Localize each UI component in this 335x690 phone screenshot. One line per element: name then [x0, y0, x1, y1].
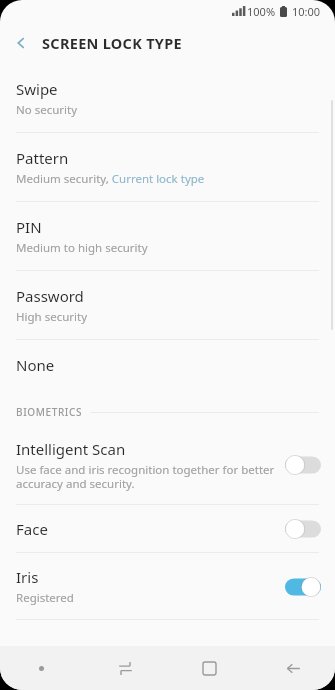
staticText: High security — [16, 309, 88, 325]
button[interactable]: Back — [0, 22, 42, 64]
staticText: PIN — [16, 217, 42, 237]
button[interactable]: None — [0, 340, 335, 389]
button[interactable]: Menu indicator — [0, 646, 83, 690]
staticText: 10:00 — [292, 4, 321, 19]
staticText: No security — [16, 102, 78, 118]
button[interactable]: Iris — [0, 553, 335, 619]
staticText: Swipe — [16, 79, 58, 99]
button[interactable]: Recents — [83, 646, 167, 690]
staticText: Medium security, Current lock type — [16, 171, 205, 187]
button[interactable]: Face — [0, 505, 335, 552]
staticText: SCREEN LOCK TYPE — [42, 33, 182, 53]
button[interactable]: Home — [167, 646, 251, 690]
staticText: BIOMETRICS — [16, 405, 82, 419]
staticText: Password — [16, 286, 84, 306]
staticText: Registered — [16, 590, 74, 606]
staticText: Pattern — [16, 148, 69, 168]
button[interactable]: Pattern — [0, 133, 335, 201]
staticText: Intelligent Scan — [16, 439, 126, 459]
staticText: Face — [16, 519, 48, 539]
button[interactable]: Password — [0, 271, 335, 339]
staticText: 100% — [247, 4, 276, 19]
staticText: None — [16, 355, 55, 375]
button[interactable]: Toggle off — [285, 455, 321, 475]
button[interactable]: Toggle off — [285, 519, 321, 539]
button[interactable]: Toggle on — [285, 577, 321, 597]
staticText: Medium to high security — [16, 240, 148, 256]
staticText: Use face and iris recognition together f… — [16, 462, 275, 491]
button[interactable]: Swipe — [0, 64, 335, 132]
staticText: Iris — [16, 567, 39, 587]
button[interactable]: Back — [251, 646, 335, 690]
button[interactable]: PIN — [0, 202, 335, 270]
button[interactable]: Intelligent Scan — [0, 425, 335, 504]
